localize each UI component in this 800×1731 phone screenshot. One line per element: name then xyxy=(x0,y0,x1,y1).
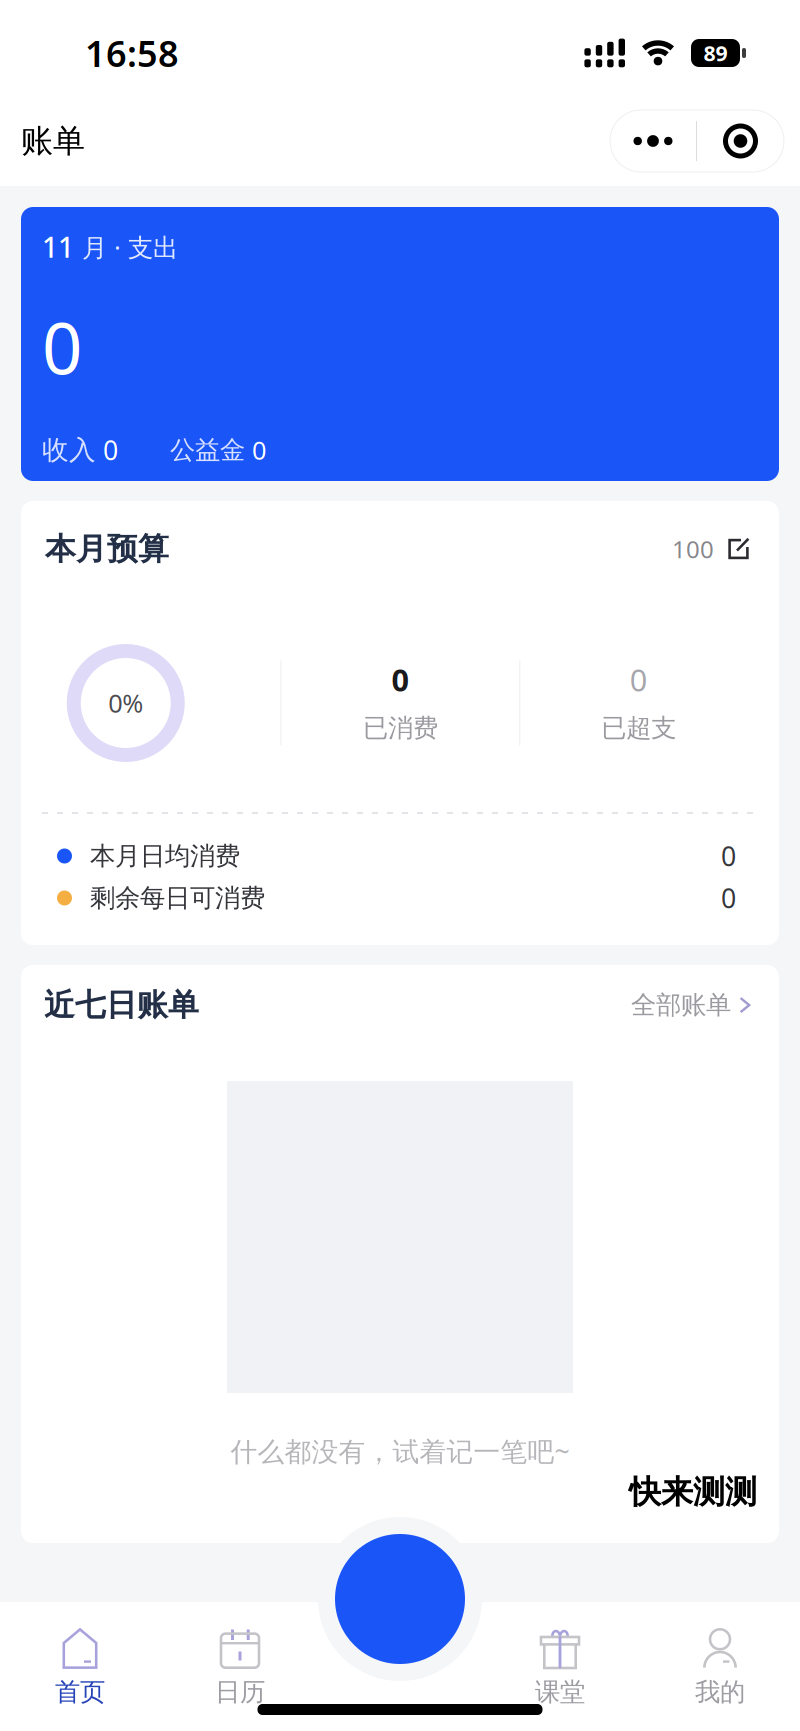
staticText: 剩余每日可消费 xyxy=(90,882,265,913)
staticText: 首页 xyxy=(55,1676,105,1707)
button[interactable]: Close xyxy=(697,110,784,172)
button[interactable]: 首页 xyxy=(0,1602,160,1731)
button[interactable]: 100 xyxy=(672,533,750,565)
button[interactable]: 日历 xyxy=(160,1602,320,1731)
staticText: 日历 xyxy=(215,1676,265,1707)
staticText: 0 xyxy=(721,838,736,874)
button[interactable]: 课堂 xyxy=(480,1602,640,1731)
staticText: 0 xyxy=(721,880,736,916)
button[interactable]: More xyxy=(610,110,696,172)
staticText: 快来测测 xyxy=(629,1472,757,1512)
staticText: 收入 xyxy=(42,434,96,466)
staticText: 0 xyxy=(96,432,118,468)
staticText: 11 xyxy=(42,228,74,266)
staticText: 本月预算 xyxy=(45,530,169,568)
staticText: 100 xyxy=(672,533,714,565)
staticText: 0 xyxy=(391,659,409,700)
staticText: 月 · 支出 xyxy=(74,230,178,264)
staticText: 近七日账单 xyxy=(44,986,199,1024)
staticText: 已消费 xyxy=(363,712,438,743)
staticText: 0 xyxy=(630,659,648,700)
staticText: 全部账单 xyxy=(631,989,731,1020)
staticText: 0 xyxy=(245,433,266,467)
staticText: 什么都没有，试着记一笔吧~ xyxy=(230,1433,569,1469)
button[interactable]: 我的 xyxy=(640,1602,800,1731)
staticText: 账单 xyxy=(21,121,85,161)
staticText: 0 xyxy=(42,300,82,394)
staticText: 课堂 xyxy=(535,1676,585,1707)
button[interactable]: Add record xyxy=(335,1534,465,1664)
button[interactable]: 全部账单 xyxy=(631,989,752,1020)
staticText: 我的 xyxy=(695,1676,745,1707)
staticText: 已超支 xyxy=(601,712,676,743)
staticText: 89 xyxy=(703,39,727,67)
staticText: 0% xyxy=(108,686,143,720)
staticText: 公益金 xyxy=(170,434,245,465)
staticText: 16:58 xyxy=(85,29,179,77)
staticText: 本月日均消费 xyxy=(90,840,240,871)
